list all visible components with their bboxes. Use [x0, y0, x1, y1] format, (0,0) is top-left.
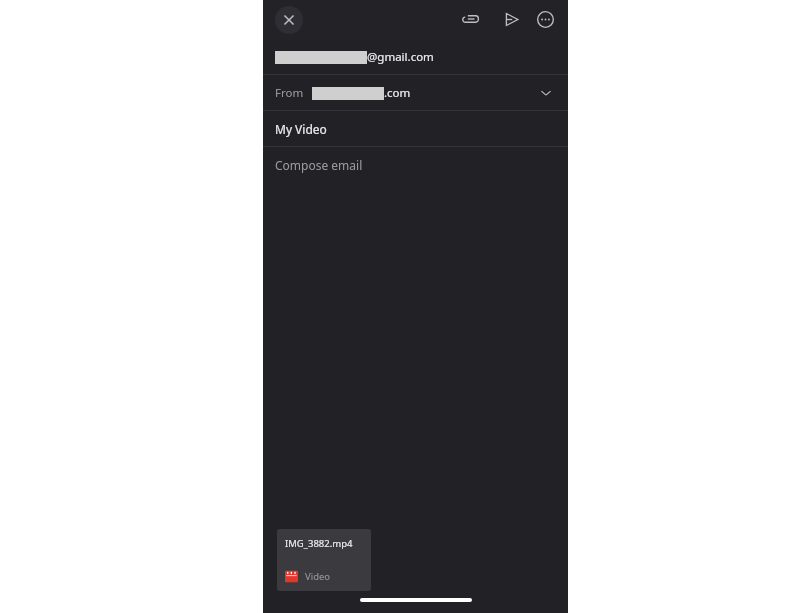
staticText: .com: [384, 85, 411, 101]
button[interactable]: IMG_3882.mp4: [277, 529, 371, 591]
staticText: Video: [305, 570, 331, 583]
button[interactable]: Send: [498, 6, 524, 32]
button[interactable]: From: [263, 75, 568, 110]
button[interactable]: Compose email: [263, 147, 568, 593]
other: Expand from: [536, 83, 556, 103]
button[interactable]: Close: [275, 6, 303, 34]
staticText: @gmail.com: [367, 49, 434, 65]
staticText: From: [275, 85, 304, 101]
staticText: My Video: [275, 121, 327, 137]
button[interactable]: My Video: [263, 111, 568, 146]
button[interactable]: @gmail.com: [263, 40, 568, 74]
button[interactable]: Attach file: [458, 6, 484, 32]
button[interactable]: More options: [532, 6, 558, 32]
staticText: Compose email: [275, 157, 363, 173]
staticText: IMG_3882.mp4: [285, 537, 353, 550]
